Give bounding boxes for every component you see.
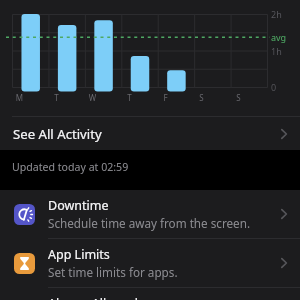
staticText: Schedule time away from the screen.: [48, 215, 251, 231]
other: Open: [278, 128, 290, 140]
staticText: T: [124, 92, 135, 103]
staticText: Set time limits for apps.: [48, 264, 178, 280]
staticText: App Limits: [48, 246, 110, 263]
staticText: 2h: [271, 8, 282, 20]
staticText: Always Allowed: [48, 295, 138, 300]
staticText: F: [160, 92, 171, 103]
staticText: Updated today at 02:59: [12, 160, 129, 174]
staticText: avg: [271, 31, 287, 43]
staticText: W: [87, 92, 98, 103]
other: Open: [278, 208, 290, 220]
staticText: S: [233, 92, 244, 103]
button[interactable]: Always Allowed: [0, 288, 300, 300]
other: Open: [278, 257, 290, 269]
staticText: M: [14, 92, 25, 103]
button[interactable]: App Limits: [0, 239, 300, 287]
staticText: 1h: [271, 45, 282, 57]
staticText: S: [196, 92, 207, 103]
staticText: 0: [271, 81, 277, 93]
staticText: Downtime: [48, 197, 109, 214]
button[interactable]: Downtime: [0, 190, 300, 238]
button[interactable]: See All Activity: [0, 117, 300, 150]
staticText: T: [51, 92, 62, 103]
staticText: See All Activity: [13, 125, 102, 143]
